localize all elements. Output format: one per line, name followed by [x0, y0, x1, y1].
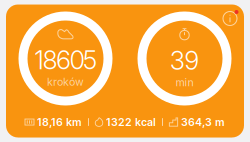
staticText: min — [175, 76, 193, 89]
staticText: 39 — [170, 45, 199, 76]
staticText: 1322 kcal — [106, 116, 156, 128]
button[interactable]: Info — [218, 6, 242, 30]
staticText: 18605 — [34, 45, 97, 75]
staticText: 364,3 m — [181, 116, 225, 128]
staticText: kroków — [47, 75, 84, 88]
staticText: 18,16 km — [37, 116, 82, 128]
